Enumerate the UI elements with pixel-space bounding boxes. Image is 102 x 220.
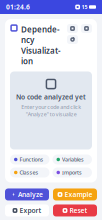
staticText: Imports — [62, 169, 82, 176]
button[interactable]: Zoom in — [67, 24, 78, 33]
staticText: Analyze — [18, 190, 43, 199]
button[interactable]: Reset — [53, 204, 97, 216]
staticText: Visualization — [21, 45, 61, 66]
staticText: 01:24.6 — [6, 3, 30, 11]
button[interactable]: Analyze — [5, 188, 49, 200]
staticText: Functions — [19, 156, 43, 163]
staticText: Example — [64, 190, 92, 199]
staticText: No code analyzed yet — [16, 93, 86, 101]
staticText: Enter your code and click "Analyze" to v… — [21, 103, 81, 118]
button[interactable]: Zoom out — [81, 24, 92, 33]
button[interactable]: Reset view — [67, 35, 78, 44]
button[interactable]: Example — [53, 188, 97, 200]
staticText: Variables — [62, 156, 84, 163]
staticText: Classes — [19, 169, 38, 176]
button[interactable]: Export — [5, 204, 49, 216]
staticText: Dependency — [21, 24, 60, 45]
staticText: Reset — [69, 206, 87, 215]
staticText: 15 — [81, 3, 87, 11]
staticText: Export — [19, 206, 41, 215]
